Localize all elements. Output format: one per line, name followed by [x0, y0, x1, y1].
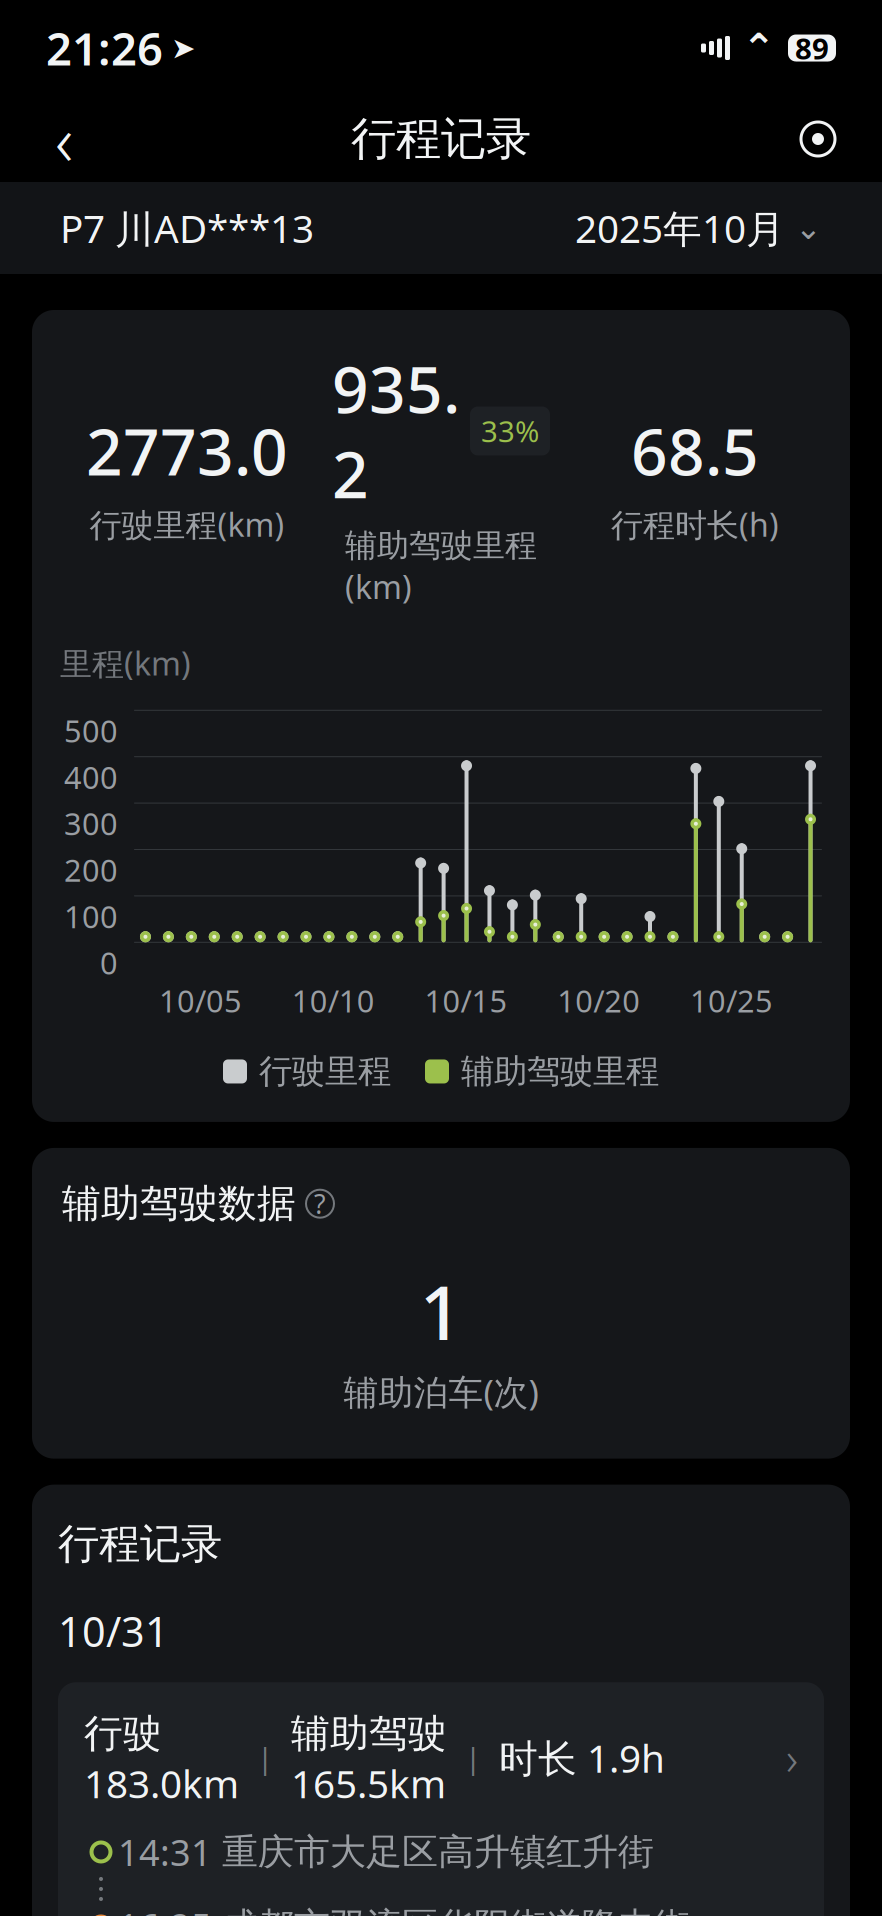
staticText: 行驶里程 — [259, 1051, 391, 1092]
staticText: 辅助驾驶 165.5km — [291, 1706, 447, 1809]
staticText: ➤ — [171, 31, 196, 65]
staticText: 935.2 — [332, 346, 460, 516]
staticText: 0 — [100, 942, 118, 983]
staticText: 辅助驾驶数据 — [62, 1180, 296, 1227]
staticText: 2773.0 — [86, 408, 288, 493]
staticText: 33% — [481, 411, 539, 450]
staticText: 10/10 — [292, 980, 375, 1021]
staticText: 500 — [64, 710, 118, 751]
staticText: 辅助泊车(次) — [343, 1369, 538, 1415]
staticText: ? — [314, 1186, 326, 1221]
staticText: 10/31 — [58, 1603, 169, 1658]
staticText: 行程记录 — [351, 111, 531, 167]
staticText: P7 川AD***13 — [60, 202, 314, 254]
staticText: 里程(km) — [60, 642, 191, 684]
staticText: 400 — [64, 757, 118, 797]
staticText: 行驶 183.0km — [84, 1706, 239, 1809]
staticText: | — [257, 1738, 273, 1777]
button[interactable]: 2025年10月 — [575, 194, 822, 262]
staticText: ‹ — [55, 93, 73, 185]
staticText: 68.5 — [631, 408, 759, 493]
button[interactable]: Settings — [782, 103, 854, 175]
staticText: 行驶里程(km) — [89, 503, 284, 546]
staticText: 89 — [795, 28, 829, 67]
staticText: 10/15 — [424, 980, 507, 1021]
staticText: 10/05 — [159, 980, 242, 1021]
staticText: 时长 1.9h — [499, 1732, 665, 1783]
staticText: 重庆市大足区高升镇红升街 — [222, 1830, 654, 1874]
staticText: › — [786, 1727, 798, 1788]
button[interactable]: Back — [28, 103, 100, 175]
staticText: 成都市双流区华阳街道隆丰街 — [222, 1904, 690, 1916]
staticText: 辅助驾驶里程(km) — [345, 526, 537, 608]
button[interactable]: 行驶 183.0km — [58, 1682, 824, 1916]
staticText: 300 — [64, 803, 118, 844]
staticText: 14:31 — [118, 1828, 212, 1876]
staticText: ⌃ — [742, 25, 776, 71]
staticText: 10/25 — [690, 980, 773, 1021]
staticText: 1 — [419, 1261, 462, 1361]
staticText: 行程记录 — [58, 1519, 222, 1569]
staticText: ⌄ — [795, 210, 822, 246]
staticText: | — [465, 1738, 481, 1777]
staticText: 200 — [64, 849, 118, 890]
button[interactable]: Help — [306, 1190, 334, 1218]
staticText: 100 — [64, 896, 118, 937]
staticText: 行程时长(h) — [611, 503, 779, 546]
staticText: 10/20 — [557, 980, 640, 1021]
staticText: 16:25 — [118, 1902, 212, 1916]
staticText: 2025年10月 — [575, 202, 785, 254]
staticText: 辅助驾驶里程 — [461, 1051, 659, 1092]
staticText: 21:26 — [46, 18, 163, 78]
